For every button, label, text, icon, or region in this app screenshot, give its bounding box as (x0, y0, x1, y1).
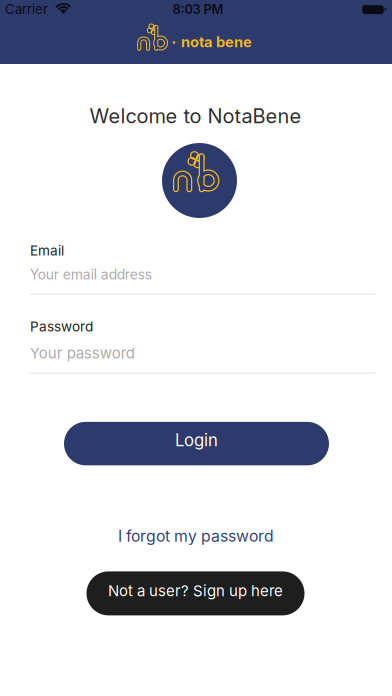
staticText: 8:03 PM (172, 2, 223, 17)
staticText: Your email address (30, 266, 152, 283)
button[interactable]: Your email address (30, 266, 375, 295)
button[interactable]: Not a user? Sign up here (86, 571, 304, 615)
staticText: Your password (30, 344, 135, 362)
staticText: I forgot my password (118, 526, 274, 545)
button[interactable]: Your password (30, 344, 375, 374)
staticText: Email (30, 242, 64, 259)
staticText: Not a user? Sign up here (108, 582, 283, 600)
button[interactable]: Login (64, 422, 329, 465)
staticText: Welcome to NotaBene (89, 104, 301, 128)
staticText: nota bene (181, 33, 252, 51)
staticText: Password (30, 318, 93, 335)
staticText: Login (175, 430, 218, 450)
button[interactable]: I forgot my password (118, 526, 274, 545)
staticText: Carrier (5, 1, 48, 17)
